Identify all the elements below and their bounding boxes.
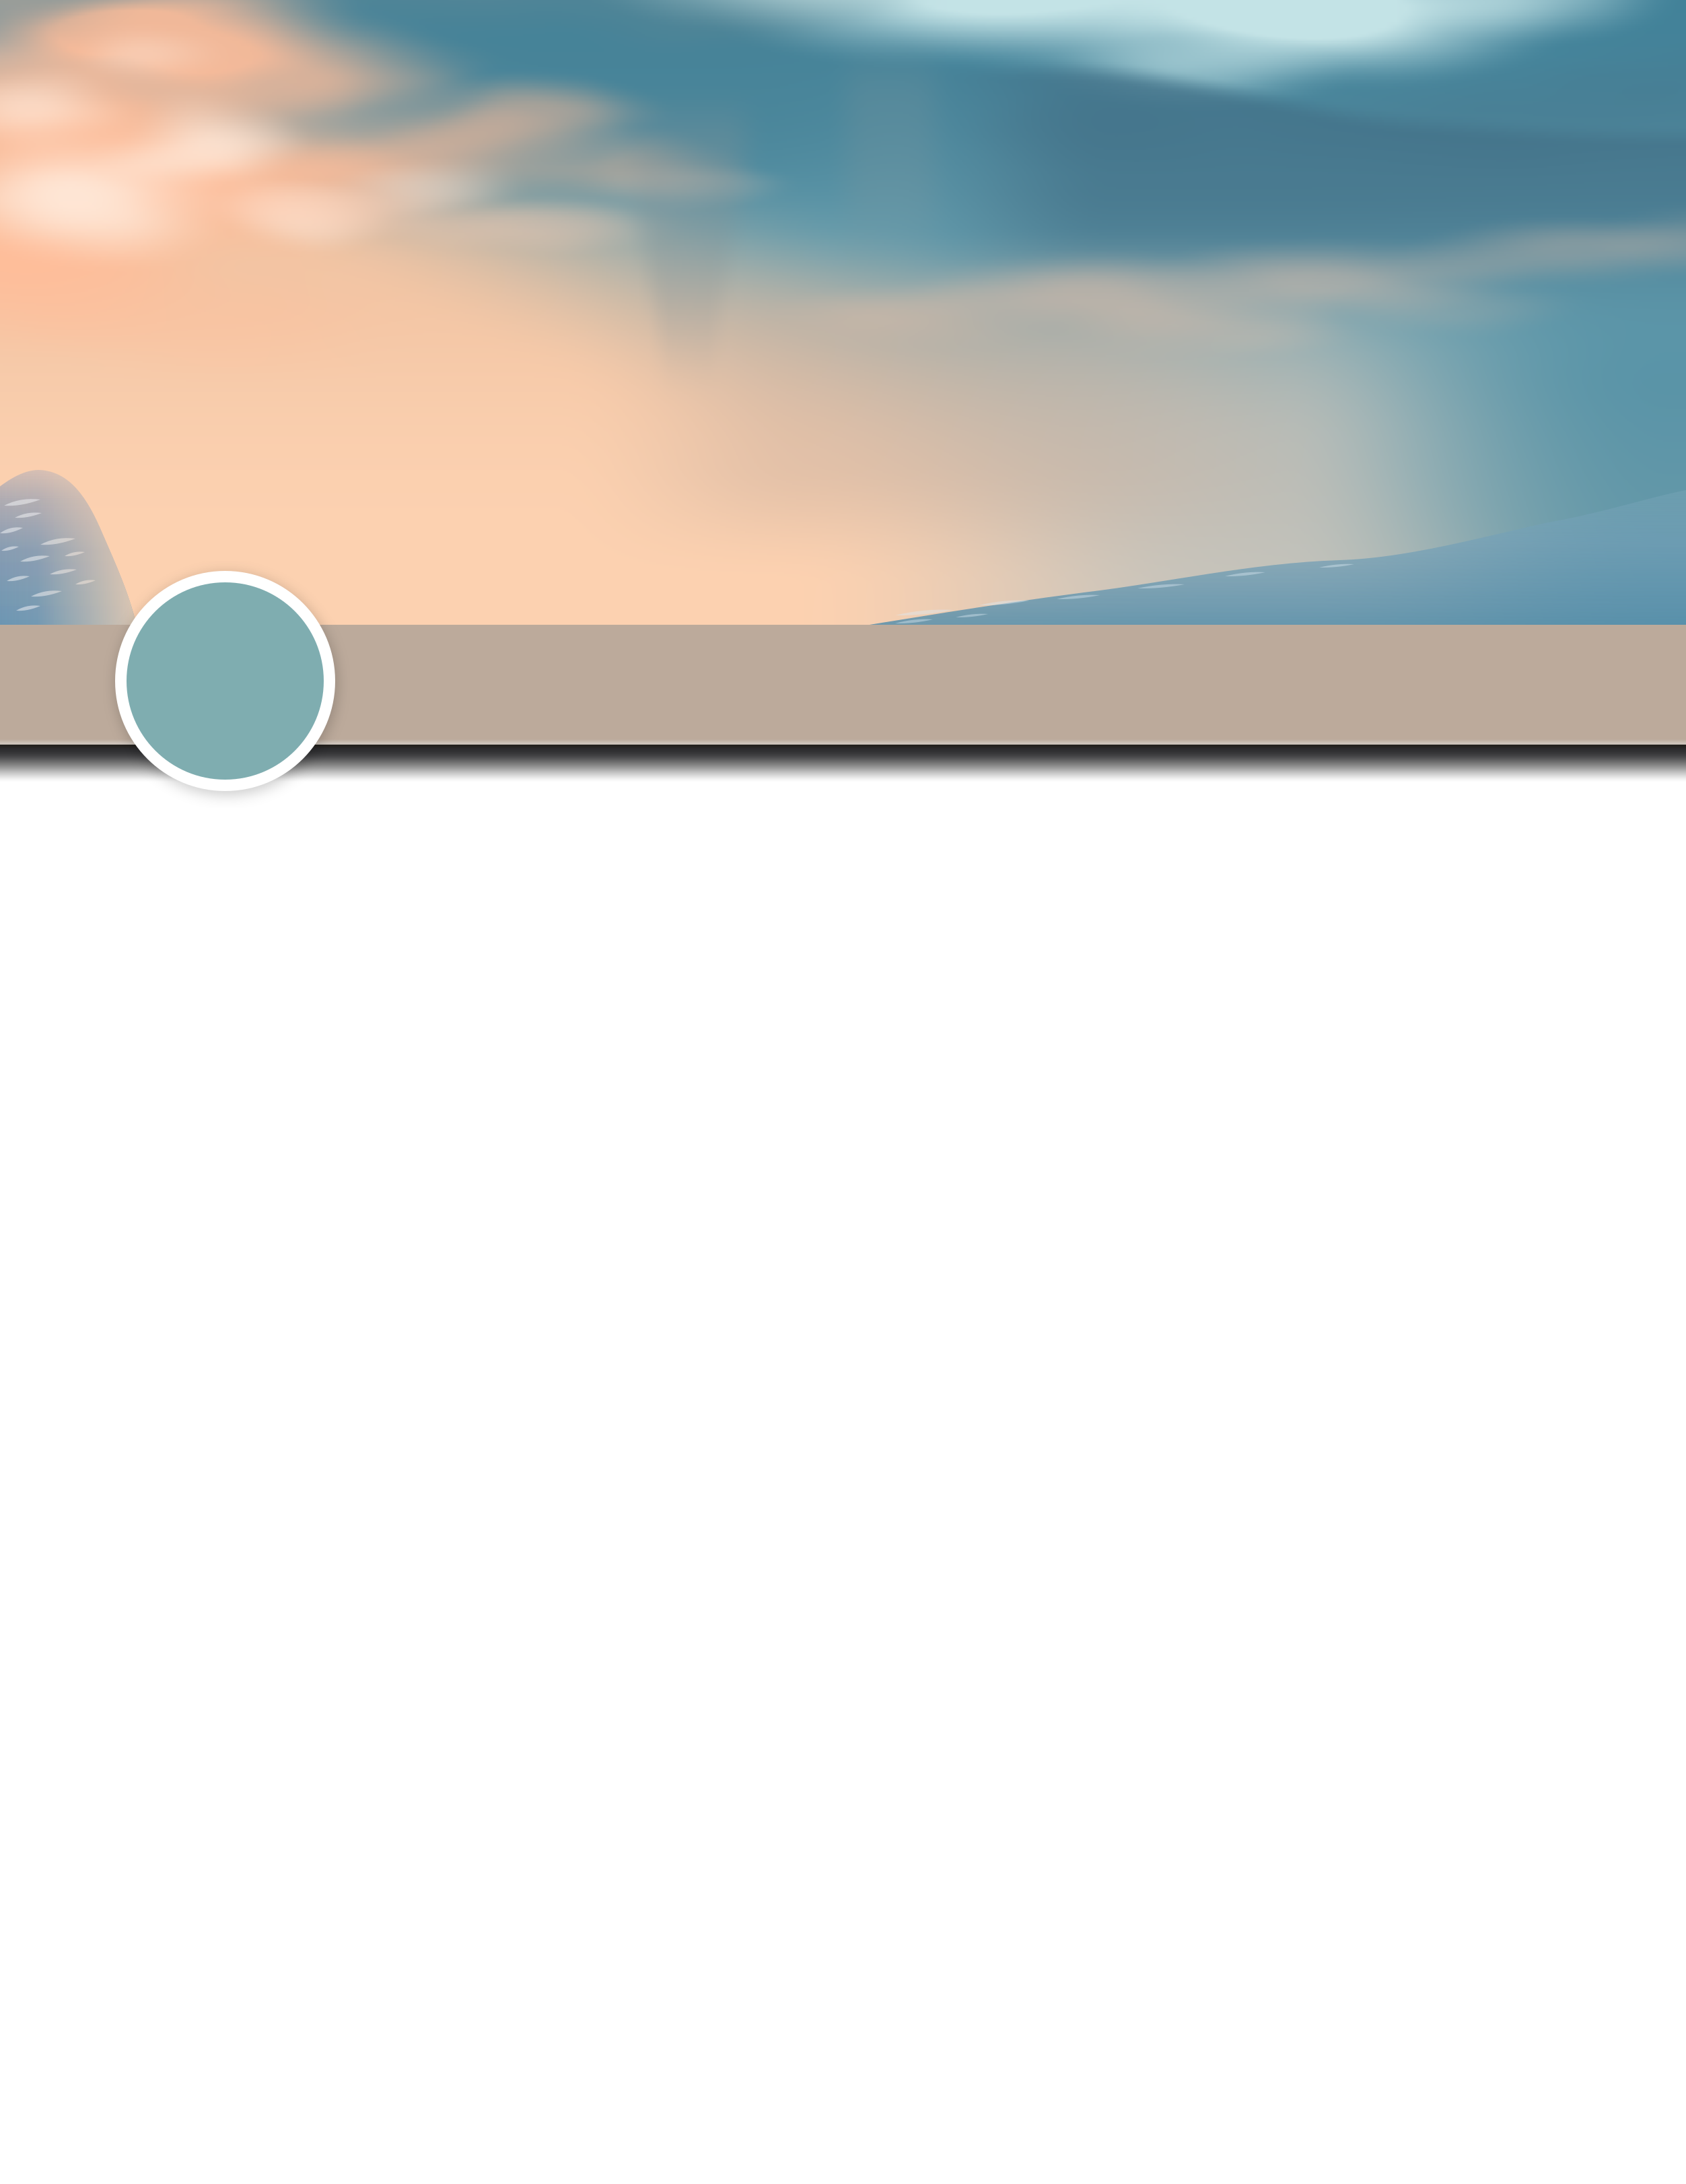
button[interactable]: Profile photo	[115, 571, 335, 791]
